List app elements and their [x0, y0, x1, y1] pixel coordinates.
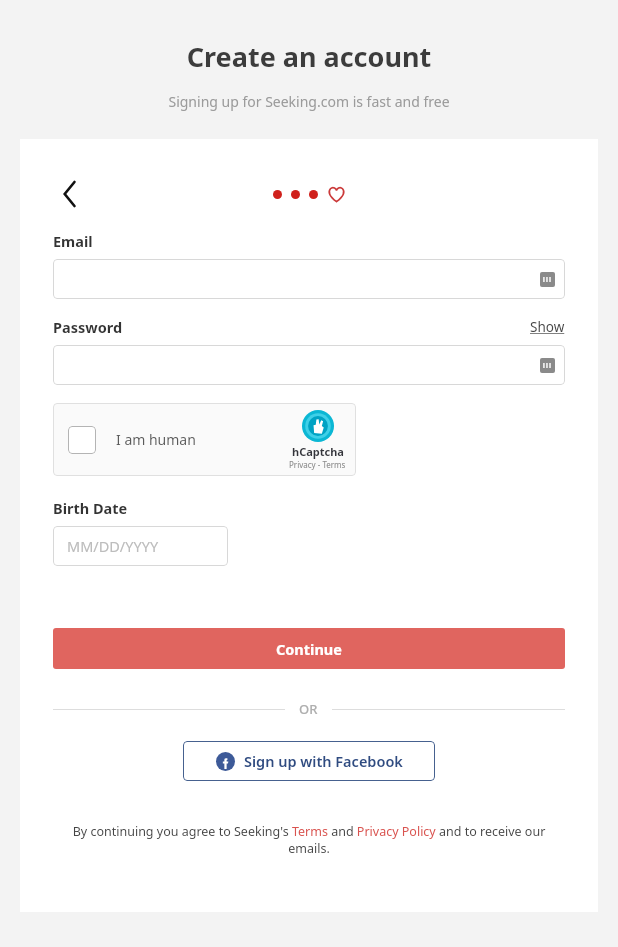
staticText: hCaptcha: [292, 444, 344, 459]
staticText: By continuing you agree to Seeking's Ter…: [53, 823, 565, 857]
button[interactable]: Back: [53, 177, 87, 211]
staticText: Privacy - Terms: [289, 459, 346, 470]
staticText: Email: [53, 231, 93, 251]
button[interactable]: Sign up with Facebook: [183, 741, 435, 781]
button[interactable]: Continue: [53, 628, 565, 669]
button[interactable]: [53, 345, 565, 385]
button[interactable]: Show: [530, 318, 565, 336]
staticText: MM/DD/YYYY: [67, 536, 159, 556]
staticText: OR: [299, 700, 318, 718]
button[interactable]: MM/DD/YYYY: [53, 526, 228, 566]
button[interactable]: [53, 259, 565, 299]
button[interactable]: I am human: [53, 403, 356, 476]
staticText: Create an account: [0, 38, 618, 75]
staticText: I am human: [116, 430, 196, 449]
staticText: Sign up with Facebook: [244, 751, 403, 771]
staticText: Signing up for Seeking.com is fast and f…: [0, 92, 618, 111]
staticText: Continue: [276, 639, 342, 659]
staticText: Show: [530, 318, 565, 336]
staticText: Password: [53, 317, 123, 337]
staticText: Birth Date: [53, 498, 128, 518]
